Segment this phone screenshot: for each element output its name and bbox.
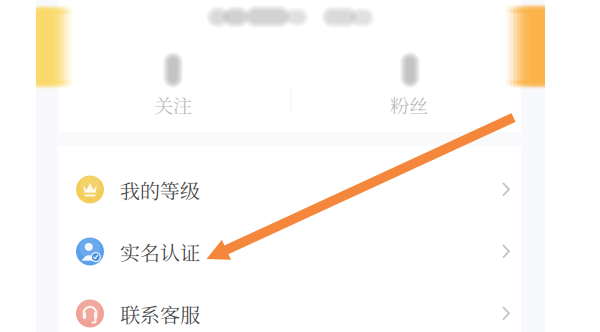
button[interactable]: 粉丝: [0, 0, 600, 332]
button[interactable]: 关注: [0, 0, 600, 332]
staticText: 粉丝: [390, 91, 428, 119]
button[interactable]: 实名认证: [0, 0, 600, 332]
staticText: 联系客服: [120, 299, 200, 328]
button[interactable]: 联系客服: [0, 0, 600, 332]
staticText: 实名认证: [120, 237, 200, 266]
button[interactable]: 我的等级: [0, 0, 600, 332]
staticText: 我的等级: [120, 175, 200, 204]
staticText: 关注: [154, 91, 192, 119]
